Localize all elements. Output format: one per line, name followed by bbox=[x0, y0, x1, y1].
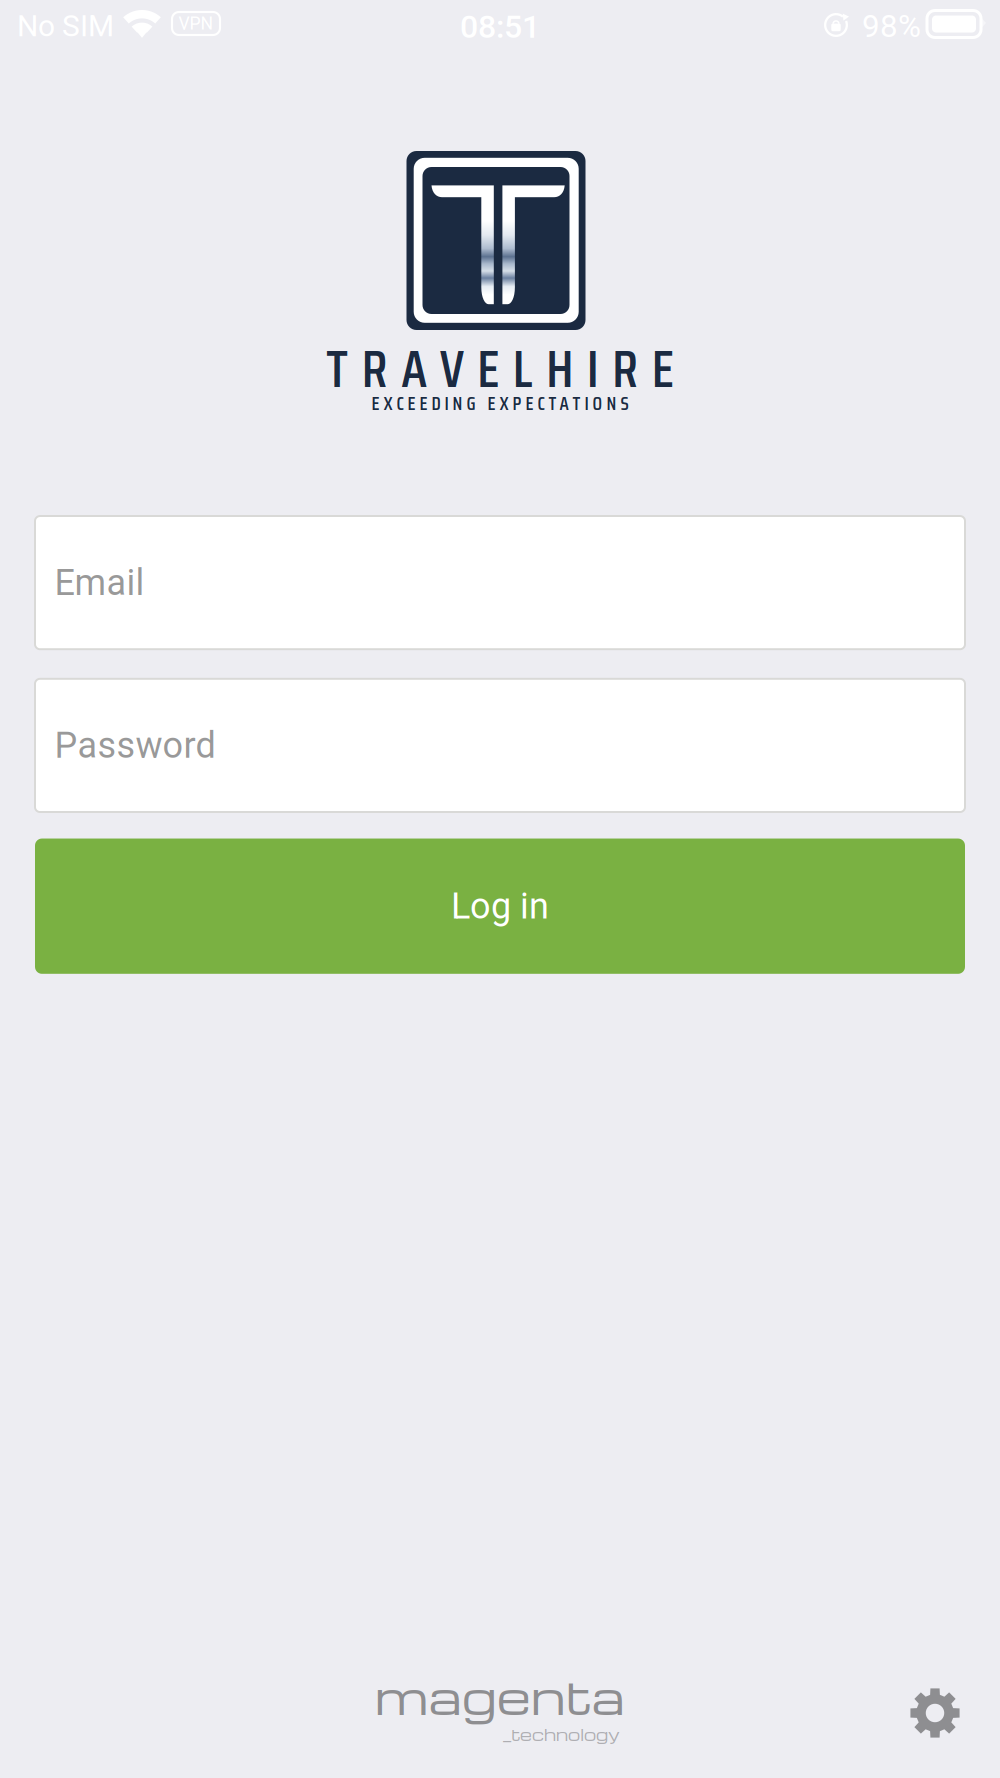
button[interactable]: Password bbox=[35, 679, 965, 812]
staticText: VPN bbox=[178, 13, 213, 34]
staticText: 08:51 bbox=[460, 8, 540, 45]
staticText: 98% bbox=[862, 8, 921, 45]
staticText: _technology bbox=[503, 1723, 620, 1745]
button[interactable]: Log in bbox=[35, 838, 965, 974]
button[interactable]: Email bbox=[35, 516, 965, 649]
button[interactable]: Settings bbox=[910, 1688, 960, 1738]
staticText: Log in bbox=[451, 885, 549, 927]
staticText: Email bbox=[54, 561, 144, 604]
staticText: Password bbox=[54, 724, 215, 766]
staticText: TRAVELHIRE bbox=[326, 328, 674, 410]
staticText: EXCEEDING EXPECTATIONS bbox=[371, 389, 628, 418]
staticText: No SIM bbox=[17, 8, 114, 43]
staticText: magenta bbox=[375, 1664, 625, 1727]
